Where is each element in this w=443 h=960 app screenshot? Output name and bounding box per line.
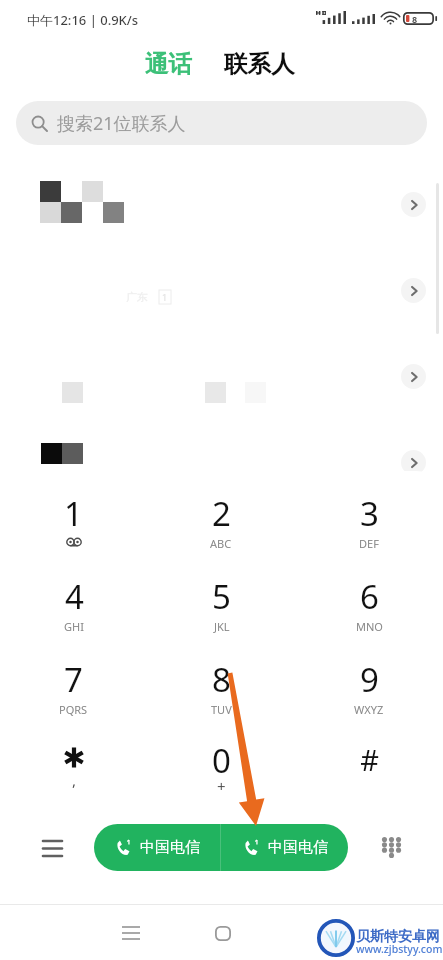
staticText: 联系人 bbox=[224, 49, 295, 79]
staticText: 2 bbox=[212, 491, 231, 536]
button[interactable]: 5 bbox=[147, 574, 295, 657]
staticText: + bbox=[217, 776, 226, 796]
button[interactable]: 联系人 bbox=[214, 40, 305, 88]
staticText: 4 bbox=[65, 574, 84, 619]
staticText: 5 bbox=[212, 574, 231, 619]
staticText: , bbox=[72, 770, 77, 790]
staticText: TUV bbox=[211, 702, 232, 717]
button[interactable]: 8 bbox=[147, 657, 295, 740]
button[interactable]: 主页 bbox=[201, 911, 245, 955]
button[interactable]: 0 bbox=[147, 738, 295, 821]
staticText: JKL bbox=[214, 619, 230, 634]
button[interactable]: 详情 bbox=[401, 278, 426, 303]
button[interactable]: 详情 bbox=[401, 450, 426, 475]
button[interactable]: 广东 bbox=[0, 247, 443, 333]
staticText: 1 bbox=[64, 491, 83, 536]
staticText: 1 bbox=[162, 291, 168, 303]
button[interactable]: 详情 bbox=[401, 192, 426, 217]
staticText: 9 bbox=[360, 657, 379, 702]
button[interactable]: 详情 bbox=[401, 364, 426, 389]
staticText: www.zjbstyy.com bbox=[356, 942, 443, 956]
staticText: WXYZ bbox=[354, 702, 384, 717]
button[interactable]: 中国电信 bbox=[221, 824, 348, 871]
staticText: # bbox=[360, 740, 379, 779]
button[interactable]: 菜单 bbox=[30, 825, 74, 869]
button[interactable]: 拨号盘 bbox=[369, 825, 413, 869]
staticText: GHI bbox=[64, 619, 84, 634]
staticText: 搜索21位联系人 bbox=[57, 111, 186, 136]
button[interactable]: 通话 bbox=[135, 40, 202, 88]
button[interactable]: # bbox=[295, 738, 443, 821]
button[interactable]: , bbox=[0, 738, 147, 821]
staticText: 8 bbox=[412, 13, 418, 25]
button[interactable]: 详情 bbox=[0, 333, 443, 419]
staticText: 3 bbox=[360, 491, 379, 536]
staticText: 7 bbox=[64, 657, 83, 702]
staticText: ABC bbox=[210, 536, 232, 551]
button[interactable]: 搜索21位联系人 bbox=[16, 101, 427, 145]
button[interactable]: 9 bbox=[295, 657, 443, 740]
button[interactable]: 4 bbox=[0, 574, 147, 657]
staticText: 中国电信 bbox=[140, 838, 200, 857]
button[interactable]: 2 bbox=[147, 491, 295, 574]
button[interactable]: 详情 bbox=[0, 161, 443, 247]
staticText: 0 bbox=[212, 738, 231, 783]
button[interactable]: 1 bbox=[0, 491, 147, 574]
staticText: PQRS bbox=[59, 702, 88, 717]
button[interactable]: 6 bbox=[295, 574, 443, 657]
staticText: 6 bbox=[360, 574, 379, 619]
staticText: 中国电信 bbox=[268, 838, 328, 857]
button[interactable]: 广东深圳 移动 bbox=[0, 419, 443, 505]
staticText: 通话 bbox=[145, 49, 192, 79]
staticText: 中午12:16 | 0.9K/s bbox=[27, 11, 139, 29]
button[interactable]: 7 bbox=[0, 657, 147, 740]
button[interactable]: 3 bbox=[295, 491, 443, 574]
staticText: 贝斯特安卓网 bbox=[356, 928, 440, 946]
staticText: 8 bbox=[212, 657, 231, 702]
button[interactable]: 最近任务 bbox=[109, 911, 153, 955]
staticText: DEF bbox=[359, 536, 379, 551]
staticText: MNO bbox=[356, 619, 383, 634]
staticText: 广东 bbox=[126, 290, 148, 304]
button[interactable]: 中国电信 bbox=[94, 824, 220, 871]
